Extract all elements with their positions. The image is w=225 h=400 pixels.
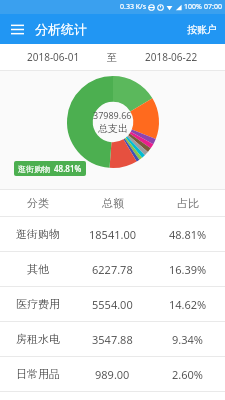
staticText: 分类 — [27, 196, 49, 210]
button[interactable]: 医疗费用 — [0, 287, 225, 321]
button[interactable]: 按账户 — [179, 16, 225, 43]
staticText: 48.81% — [169, 227, 207, 242]
button[interactable]: 其他 — [0, 252, 225, 286]
button[interactable]: 逛街购物 — [14, 161, 86, 176]
staticText: 逛街购物 — [16, 227, 60, 241]
staticText: 占比 — [177, 196, 199, 210]
staticText: 总支出 — [98, 122, 128, 135]
staticText: 总额 — [102, 196, 124, 210]
staticText: 37989.66 — [93, 109, 132, 121]
staticText: 房租水电 — [16, 332, 60, 346]
staticText: 989.00 — [95, 367, 130, 382]
button[interactable]: Menu — [5, 17, 29, 41]
button[interactable]: 2018-06-01 — [0, 44, 107, 70]
staticText: 07:00 — [204, 2, 222, 12]
staticText: 0.33 K/s — [120, 2, 146, 12]
staticText: 6227.78 — [92, 262, 133, 277]
staticText: 48.81% — [54, 163, 82, 174]
staticText: 2018-06-01 — [27, 50, 80, 64]
staticText: 至 — [107, 51, 117, 64]
staticText: 其他 — [27, 262, 49, 276]
staticText: 日常用品 — [16, 367, 60, 381]
staticText: 3547.88 — [92, 332, 133, 347]
staticText: 18541.00 — [89, 227, 136, 242]
staticText: 14.62% — [169, 297, 207, 312]
staticText: 2.60% — [172, 367, 203, 382]
button[interactable]: 逛街购物 — [0, 217, 225, 251]
staticText: 医疗费用 — [16, 297, 60, 311]
button[interactable]: 日常用品 — [0, 357, 225, 391]
staticText: 16.39% — [169, 262, 207, 277]
staticText: 按账户 — [187, 23, 217, 36]
staticText: 分析统计 — [35, 21, 87, 37]
button[interactable]: 2018-06-22 — [117, 44, 225, 70]
staticText: 5554.00 — [92, 297, 133, 312]
button[interactable]: 房租水电 — [0, 322, 225, 356]
staticText: 逛街购物 — [18, 164, 50, 174]
staticText: 9.34% — [172, 332, 203, 347]
staticText: 2018-06-22 — [145, 50, 198, 64]
staticText: 100% — [184, 2, 202, 12]
